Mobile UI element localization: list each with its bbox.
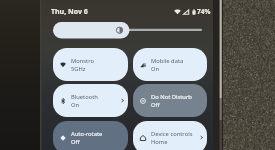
button[interactable]: Device controls bbox=[133, 121, 207, 150]
staticText: On bbox=[71, 101, 80, 109]
staticText: Home bbox=[151, 138, 168, 146]
staticText: Bluetooth bbox=[71, 93, 98, 101]
staticText: Mobile data bbox=[151, 57, 184, 65]
staticText: Thu, Nov 6 bbox=[51, 7, 88, 17]
button[interactable]: Mobile data bbox=[133, 48, 207, 81]
staticText: Off bbox=[151, 101, 160, 109]
staticText: Do Not Disturb bbox=[151, 93, 192, 101]
staticText: Device controls bbox=[151, 130, 193, 138]
staticText: Monstro bbox=[71, 57, 95, 65]
button[interactable]: Do Not Disturb bbox=[133, 84, 207, 117]
button[interactable]: Bluetooth bbox=[53, 84, 128, 117]
button[interactable]: Monstro bbox=[53, 48, 128, 81]
staticText: On bbox=[151, 65, 160, 73]
staticText: 5GHz bbox=[71, 65, 86, 73]
staticText: 74% bbox=[197, 7, 211, 16]
button[interactable]: Brightness bbox=[53, 22, 202, 39]
button[interactable]: Auto-rotate bbox=[53, 121, 128, 150]
staticText: Auto-rotate bbox=[71, 130, 103, 138]
staticText: Off bbox=[71, 138, 80, 146]
